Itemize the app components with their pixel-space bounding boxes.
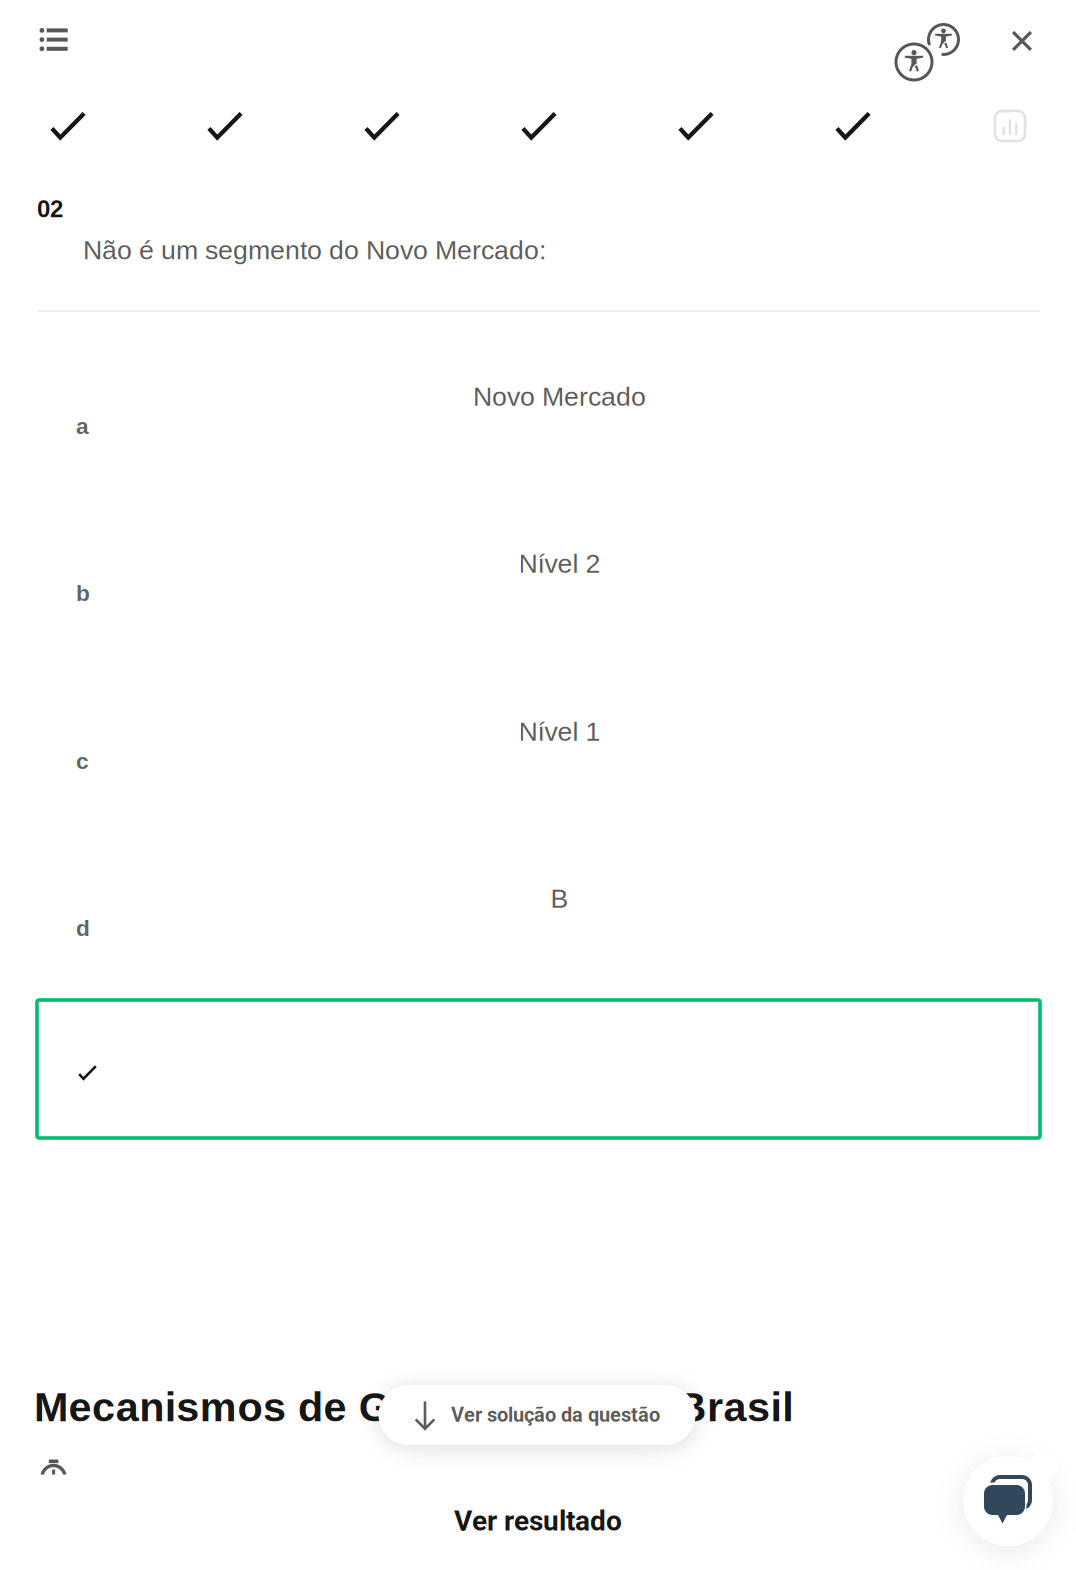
staticText: Mecanismos de Governança no Brasil	[34, 1384, 793, 1430]
button[interactable]: Accessibility options	[896, 23, 964, 85]
staticText: Nível 2	[518, 549, 600, 578]
staticText: c	[76, 748, 89, 774]
button[interactable]: Correct answer	[37, 1000, 1040, 1138]
button[interactable]: Answered question	[175, 94, 275, 156]
staticText: b	[76, 580, 90, 606]
button[interactable]: B	[37, 831, 1040, 998]
button[interactable]: Novo Mercado	[37, 329, 1040, 496]
button[interactable]: Answered question	[332, 94, 432, 156]
button[interactable]: Question list	[16, 4, 92, 76]
staticText: a	[76, 413, 89, 439]
button[interactable]: Ver solução da questão	[374, 1378, 699, 1452]
button[interactable]: Nível 1	[37, 664, 1040, 831]
button[interactable]: Answered question	[489, 94, 589, 156]
staticText: 02	[37, 196, 63, 222]
staticText: Ver resultado	[454, 1505, 622, 1537]
button[interactable]: Nível 2	[37, 496, 1040, 663]
button[interactable]: Answered question	[803, 94, 903, 156]
staticText: B	[550, 884, 568, 913]
button[interactable]: Ver resultado	[378, 1492, 698, 1550]
button[interactable]: Answered question	[646, 94, 746, 156]
staticText: Nível 1	[518, 717, 600, 746]
staticText: Ver solução da questão	[451, 1403, 660, 1427]
staticText: Não é um segmento do Novo Mercado:	[83, 235, 546, 265]
staticText: d	[76, 915, 90, 941]
button[interactable]: Answered question	[18, 94, 118, 156]
button[interactable]: Close	[991, 10, 1053, 72]
staticText: Novo Mercado	[473, 382, 646, 411]
button[interactable]: Statistics	[981, 97, 1039, 155]
button[interactable]: Chat support	[963, 1452, 1058, 1546]
